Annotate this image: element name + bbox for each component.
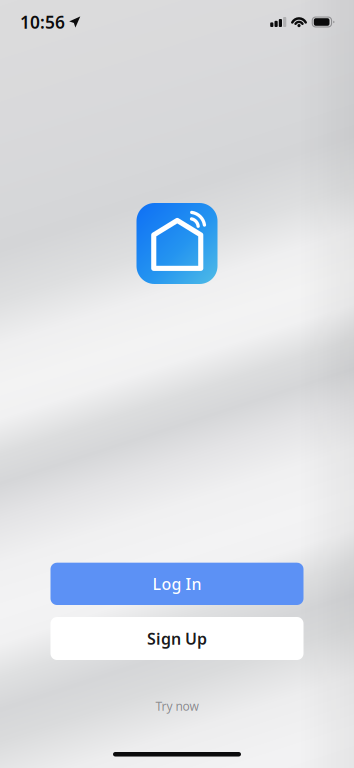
staticText: Sign Up bbox=[147, 628, 207, 649]
button[interactable]: Try now bbox=[155, 698, 198, 714]
staticText: 10:56 bbox=[20, 10, 65, 33]
button[interactable]: Sign Up bbox=[50, 617, 303, 660]
staticText: Log In bbox=[152, 573, 201, 594]
button[interactable]: Log In bbox=[50, 563, 303, 605]
staticText: Try now bbox=[155, 698, 198, 714]
